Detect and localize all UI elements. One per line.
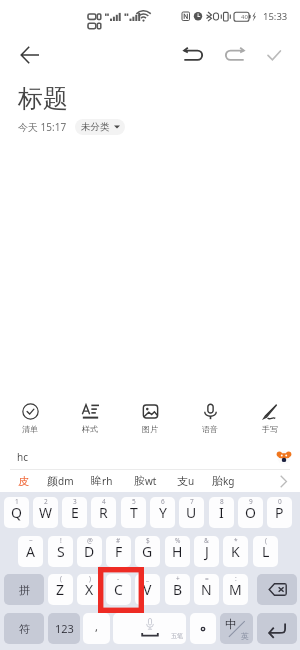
button[interactable]: 2	[33, 497, 58, 528]
staticText: B	[173, 580, 183, 599]
button[interactable]: 图片	[120, 398, 180, 444]
staticText: R	[99, 503, 108, 522]
button[interactable]	[190, 613, 216, 644]
button[interactable]: (	[48, 574, 73, 605]
staticText: Q	[11, 503, 22, 522]
button[interactable]: 颜	[47, 474, 74, 488]
button[interactable]: &	[194, 536, 219, 567]
staticText: O	[245, 503, 256, 522]
staticText: wt	[145, 474, 157, 488]
button[interactable]: $	[135, 536, 160, 567]
button[interactable]: Enter	[257, 613, 297, 644]
staticText: F	[115, 542, 123, 561]
staticText: K	[231, 542, 240, 561]
button[interactable]: More candidates	[280, 475, 287, 488]
button[interactable]: 胺	[134, 474, 157, 488]
button[interactable]: =	[194, 574, 219, 605]
staticText: rh	[102, 474, 113, 488]
button[interactable]: _	[135, 574, 160, 605]
button[interactable]: 6	[150, 497, 175, 528]
staticText: G	[142, 542, 153, 561]
button[interactable]: Space	[113, 613, 186, 644]
button[interactable]: 1	[4, 497, 29, 528]
button[interactable]: Done	[254, 35, 294, 75]
staticText: V	[143, 580, 152, 599]
button[interactable]: %	[165, 536, 190, 567]
staticText: Y	[159, 503, 167, 522]
staticText: ,	[95, 619, 98, 634]
staticText: 手写	[262, 424, 278, 434]
button[interactable]: 样式	[60, 398, 120, 444]
button[interactable]: 0	[267, 497, 292, 528]
staticText: 4	[102, 497, 106, 506]
staticText: #	[116, 536, 121, 545]
button[interactable]: 4	[91, 497, 116, 528]
button[interactable]: 7	[179, 497, 204, 528]
button[interactable]: 眸	[91, 474, 113, 488]
button[interactable]: 支	[177, 474, 195, 488]
button[interactable]: 拼	[4, 574, 44, 605]
staticText: 0	[278, 497, 282, 506]
button[interactable]: 未分类	[75, 119, 125, 135]
button[interactable]: -	[106, 574, 131, 605]
button[interactable]: 清单	[0, 398, 60, 444]
staticText: 语音	[202, 424, 218, 434]
staticText: M	[229, 580, 242, 599]
staticText: )	[89, 574, 91, 583]
button[interactable]: *	[223, 536, 248, 567]
button[interactable]: Delete	[257, 574, 297, 605]
staticText: 清单	[22, 424, 38, 434]
staticText: A	[26, 542, 35, 561]
button[interactable]: 3	[62, 497, 87, 528]
button[interactable]: #	[106, 536, 131, 567]
staticText: -	[117, 574, 120, 583]
staticText: 9	[249, 497, 253, 506]
button[interactable]: )	[77, 574, 102, 605]
staticText: $	[146, 536, 150, 545]
staticText: ~	[29, 536, 33, 545]
button[interactable]: 语音	[180, 398, 240, 444]
button[interactable]: @	[77, 536, 102, 567]
staticText: 颜	[47, 474, 58, 488]
staticText: 6	[161, 497, 165, 506]
staticText: 胺	[134, 474, 145, 488]
staticText: S	[57, 542, 65, 561]
staticText: E	[71, 503, 79, 522]
staticText: &	[204, 536, 209, 545]
button[interactable]: Undo	[174, 35, 214, 75]
staticText: :	[235, 574, 237, 583]
button[interactable]: 123	[48, 613, 80, 644]
staticText: D	[84, 542, 95, 561]
button[interactable]: 胎	[212, 474, 235, 488]
staticText: U	[186, 503, 197, 522]
staticText: 2	[44, 497, 48, 506]
staticText: 中	[225, 617, 237, 631]
button[interactable]: ~	[18, 536, 43, 567]
staticText: !	[60, 536, 62, 545]
staticText: N	[201, 580, 212, 599]
staticText: 胎	[212, 474, 223, 488]
staticText: 皮	[18, 474, 29, 488]
button[interactable]: Redo	[214, 35, 254, 75]
button[interactable]: ,	[83, 613, 110, 644]
staticText: 15:33	[263, 10, 288, 23]
button[interactable]: 5	[121, 497, 146, 528]
button[interactable]: Assistant	[276, 449, 292, 465]
staticText: 符	[19, 622, 30, 636]
button[interactable]: 手写	[240, 398, 300, 444]
staticText: 今天 15:17	[18, 120, 67, 134]
staticText: =	[205, 574, 209, 583]
button[interactable]: !	[48, 536, 73, 567]
staticText: _	[146, 574, 149, 583]
button[interactable]: 9	[238, 497, 263, 528]
button[interactable]: 8	[209, 497, 234, 528]
button[interactable]: :	[223, 574, 248, 605]
button[interactable]: +	[165, 574, 190, 605]
button[interactable]: (	[253, 536, 278, 567]
button[interactable]: 符	[4, 613, 44, 644]
button[interactable]: Back	[8, 33, 52, 77]
button[interactable]: Switch language	[220, 613, 253, 644]
staticText: L	[262, 542, 270, 561]
staticText: C	[114, 580, 123, 599]
staticText: 7	[190, 497, 194, 506]
